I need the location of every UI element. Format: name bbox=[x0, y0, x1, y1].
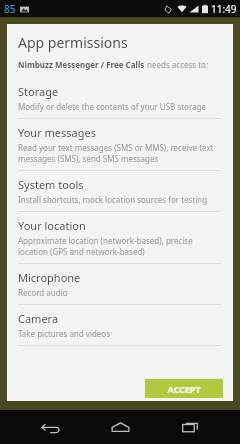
staticText: Approximate location (network-based), pr… bbox=[18, 235, 221, 257]
staticText: Take pictures and videos bbox=[18, 328, 111, 339]
staticText: Read your text messages (SMS or MMS), re… bbox=[18, 142, 221, 164]
button[interactable]: Storage bbox=[7, 78, 233, 119]
button[interactable]: ACCEPT bbox=[145, 379, 223, 398]
staticText: Your messages bbox=[18, 125, 96, 140]
button[interactable]: Camera bbox=[7, 305, 233, 346]
staticText: Camera bbox=[18, 311, 59, 326]
staticText: Modify or delete the contents of your US… bbox=[18, 101, 206, 112]
staticText: Nimbuzz Messenger / Free Calls bbox=[18, 59, 147, 70]
staticText: ACCEPT bbox=[167, 383, 201, 395]
staticText: Storage bbox=[18, 84, 59, 99]
staticText: Microphone bbox=[18, 270, 81, 285]
staticText: System tools bbox=[18, 177, 84, 192]
staticText: 85 bbox=[4, 2, 16, 16]
staticText: Your location bbox=[18, 218, 86, 233]
button[interactable]: Microphone bbox=[7, 264, 233, 305]
staticText: Record audio bbox=[18, 287, 68, 298]
button[interactable]: Back bbox=[32, 410, 70, 444]
staticText: 11:49 bbox=[211, 2, 237, 16]
button[interactable]: Home bbox=[101, 410, 139, 444]
button[interactable]: System tools bbox=[7, 171, 233, 212]
button[interactable]: Your location bbox=[7, 212, 233, 264]
staticText: Install shortcuts, mock location sources… bbox=[18, 194, 208, 205]
button[interactable]: Recent apps bbox=[171, 410, 209, 444]
staticText: needs access to: bbox=[147, 59, 209, 70]
staticText: App permissions bbox=[18, 33, 128, 52]
button[interactable]: Your messages bbox=[7, 119, 233, 171]
